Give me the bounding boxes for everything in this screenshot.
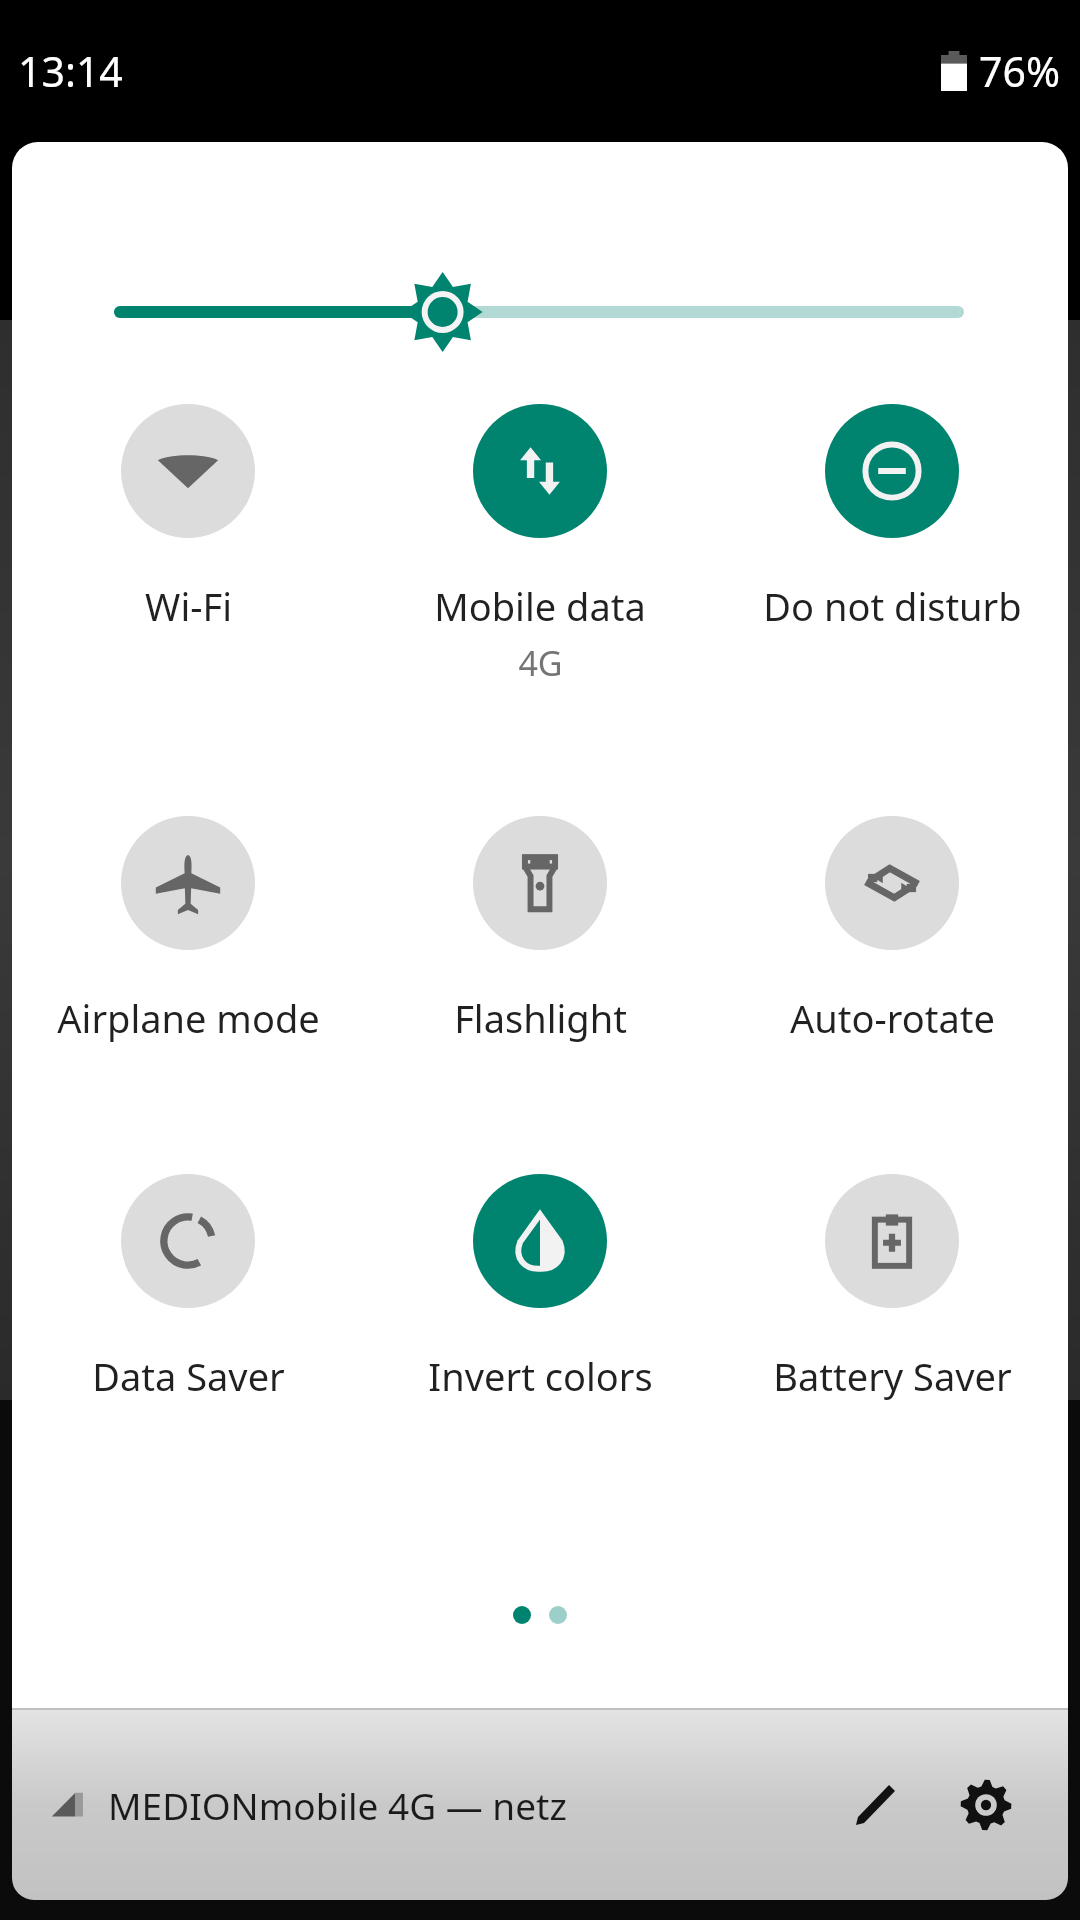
staticText: 4G xyxy=(518,640,563,686)
button[interactable]: Auto-rotate xyxy=(716,812,1068,1048)
button[interactable]: Brightness xyxy=(12,260,1068,364)
staticText: 13:14 xyxy=(18,43,123,99)
staticText: 76% xyxy=(979,43,1060,99)
staticText: Battery Saver xyxy=(773,1350,1012,1402)
staticText: Mobile data xyxy=(434,580,646,632)
staticText: Invert colors xyxy=(428,1350,653,1402)
staticText: Wi-Fi xyxy=(145,580,232,632)
button[interactable]: Invert colors xyxy=(364,1170,716,1406)
button[interactable]: Airplane mode xyxy=(12,812,364,1048)
button[interactable]: Mobile data xyxy=(364,400,716,690)
button[interactable]: Edit xyxy=(826,1757,922,1853)
staticText: Auto-rotate xyxy=(790,992,995,1044)
staticText: Data Saver xyxy=(92,1350,285,1402)
staticText: MEDIONmobile 4G — netz xyxy=(108,1780,567,1830)
button[interactable]: Battery Saver xyxy=(716,1170,1068,1406)
staticText: Flashlight xyxy=(454,992,627,1044)
staticText: Airplane mode xyxy=(57,992,320,1044)
button[interactable]: Do not disturb xyxy=(716,400,1068,636)
staticText: Do not disturb xyxy=(763,580,1022,632)
button[interactable]: Wi-Fi xyxy=(12,400,364,636)
button[interactable]: Settings xyxy=(938,1757,1034,1853)
button[interactable]: Data Saver xyxy=(12,1170,364,1406)
button[interactable]: Flashlight xyxy=(364,812,716,1048)
